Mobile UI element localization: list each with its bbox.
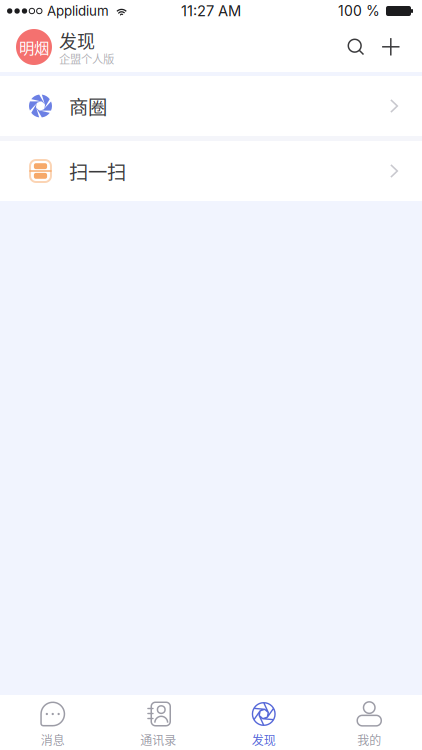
staticText: 明烟 (19, 36, 49, 58)
button[interactable]: 商圈 (0, 76, 422, 136)
staticText: 企盟个人版 (59, 50, 114, 67)
button[interactable]: Add (370, 22, 412, 72)
button[interactable]: 我的 (316, 695, 422, 750)
staticText: 消息 (41, 731, 65, 748)
button[interactable]: 消息 (0, 695, 105, 750)
staticText: 发现 (252, 731, 276, 748)
button[interactable]: Profile (16, 29, 52, 65)
button[interactable]: 扫一扫 (0, 141, 422, 201)
staticText: Applidium (47, 3, 109, 19)
button[interactable]: 发现 (211, 695, 316, 750)
staticText: 扫一扫 (69, 157, 126, 185)
staticText: 我的 (357, 731, 381, 748)
staticText: 100 % (338, 2, 380, 19)
staticText: 11:27 AM (181, 2, 241, 20)
staticText: 通讯录 (140, 731, 176, 748)
staticText: 商圈 (69, 92, 107, 120)
button[interactable]: Search (326, 22, 370, 72)
button[interactable]: 通讯录 (105, 695, 211, 750)
staticText: 发现 (59, 27, 95, 53)
